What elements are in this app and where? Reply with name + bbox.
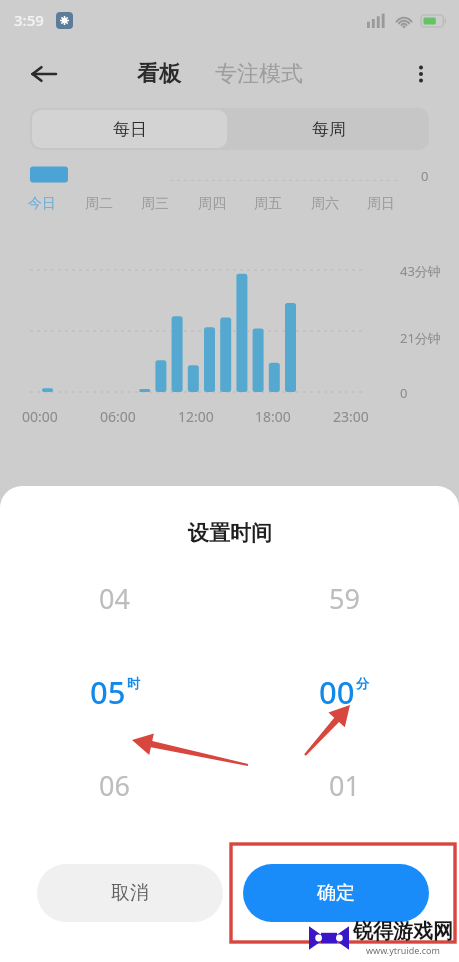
staticText: 59 <box>329 580 360 617</box>
button[interactable]: 确定 <box>243 864 429 922</box>
staticText: 每日 <box>113 119 147 140</box>
button[interactable]: 周日 <box>365 192 397 216</box>
button[interactable]: Back <box>22 52 66 96</box>
staticText: 今日 <box>28 195 56 213</box>
staticText: 周四 <box>198 195 226 213</box>
staticText: 周六 <box>311 195 339 213</box>
staticText: 设置时间 <box>188 520 272 546</box>
staticText: 05 <box>90 671 126 713</box>
staticText: 06 <box>99 767 130 804</box>
staticText: 看板 <box>137 60 181 88</box>
button[interactable]: 每日 <box>32 110 227 148</box>
staticText: www.ytruide.com <box>366 944 440 956</box>
staticText: 每周 <box>312 119 346 140</box>
staticText: 06:00 <box>100 407 136 426</box>
staticText: 周日 <box>367 195 395 213</box>
staticText: 3:59 <box>14 10 44 30</box>
button[interactable]: 04 <box>0 578 229 818</box>
button[interactable]: 周五 <box>252 192 284 216</box>
button[interactable]: More options <box>399 52 443 96</box>
staticText: 23:00 <box>333 407 369 426</box>
button[interactable]: 专注模式 <box>209 54 309 94</box>
staticText: 确定 <box>317 881 355 905</box>
button[interactable]: 看板 <box>131 54 187 94</box>
staticText: 18:00 <box>255 407 291 426</box>
staticText: 周三 <box>141 195 169 213</box>
staticText: 时 <box>127 675 140 691</box>
staticText: 12:00 <box>178 407 214 426</box>
staticText: 43分钟 <box>400 262 441 280</box>
staticText: 0 <box>400 384 408 402</box>
staticText: 00 <box>319 671 355 713</box>
staticText: 04 <box>99 580 130 617</box>
button[interactable]: 周三 <box>139 192 171 216</box>
staticText: 取消 <box>111 881 149 905</box>
button[interactable]: 周六 <box>309 192 341 216</box>
button[interactable]: 周四 <box>196 192 228 216</box>
staticText: 00:00 <box>22 407 58 426</box>
button[interactable]: 每周 <box>229 108 429 150</box>
button[interactable]: 今日 <box>26 192 58 216</box>
staticText: 21分钟 <box>400 329 441 347</box>
staticText: 周五 <box>254 195 282 213</box>
staticText: 专注模式 <box>215 60 303 88</box>
button[interactable]: 59 <box>229 578 459 818</box>
button[interactable]: 周二 <box>83 192 115 216</box>
staticText: 周二 <box>85 195 113 213</box>
staticText: 0 <box>421 167 429 185</box>
staticText: 锐得游戏网 <box>353 919 453 944</box>
staticText: 分 <box>356 675 369 691</box>
staticText: 01 <box>329 767 360 804</box>
button[interactable]: 取消 <box>37 864 223 922</box>
